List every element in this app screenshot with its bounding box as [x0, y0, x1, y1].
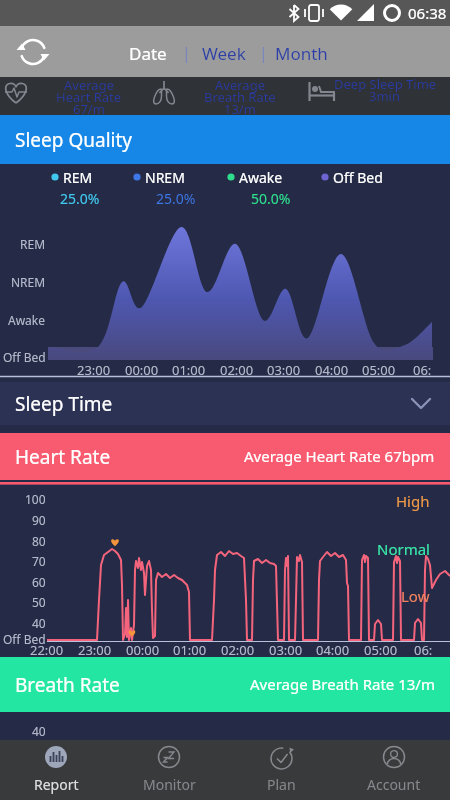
staticText: Awake: [8, 312, 46, 328]
staticText: 90: [32, 512, 46, 528]
staticText: 03:00: [269, 641, 303, 659]
staticText: NREM: [145, 168, 185, 187]
staticText: REM: [20, 236, 46, 252]
staticText: Plan: [267, 775, 296, 794]
staticText: 02:00: [220, 361, 254, 379]
staticText: 06:38: [408, 3, 447, 23]
staticText: 00:00: [126, 641, 160, 659]
staticText: Average: [64, 76, 114, 94]
staticText: 67/m: [73, 100, 105, 118]
staticText: Week: [202, 42, 246, 65]
staticText: 25.0%: [156, 189, 196, 208]
staticText: |: [182, 42, 191, 64]
staticText: 06:: [413, 361, 432, 379]
staticText: NREM: [11, 274, 46, 290]
button[interactable]: [225, 740, 337, 800]
staticText: Average Heart Rate 67bpm: [244, 446, 435, 466]
staticText: Heart Rate: [15, 444, 111, 470]
staticText: 80: [32, 533, 46, 549]
button[interactable]: [0, 740, 112, 800]
staticText: 04:00: [316, 641, 350, 659]
staticText: Account: [367, 775, 421, 794]
staticText: Monitor: [143, 775, 196, 794]
staticText: 03:00: [267, 361, 301, 379]
staticText: 06:: [414, 641, 433, 659]
staticText: 50: [32, 594, 46, 610]
staticText: Sleep Quality: [15, 127, 132, 153]
staticText: 50.0%: [251, 189, 291, 208]
staticText: 01:00: [173, 641, 207, 659]
staticText: Off Bed: [333, 168, 383, 187]
staticText: Report: [34, 775, 79, 794]
staticText: Breath Rate: [204, 88, 276, 106]
staticText: 40: [32, 615, 46, 631]
button[interactable]: Heart Rate: [0, 433, 450, 480]
staticText: Date: [129, 42, 167, 65]
staticText: Normal: [377, 539, 430, 559]
staticText: Heart Rate: [56, 88, 122, 106]
staticText: 05:00: [362, 361, 396, 379]
staticText: Sleep Time: [15, 391, 113, 417]
staticText: 100: [25, 491, 46, 507]
staticText: Off Bed: [3, 349, 46, 365]
staticText: Average: [215, 76, 265, 94]
staticText: Off Bed: [3, 631, 46, 647]
button[interactable]: Date: [120, 34, 176, 72]
button[interactable]: [338, 740, 450, 800]
staticText: REM: [63, 168, 93, 187]
staticText: 01:00: [172, 361, 206, 379]
staticText: 04:00: [315, 361, 349, 379]
staticText: High: [396, 491, 430, 511]
staticText: 3min: [369, 87, 400, 105]
staticText: Low: [401, 586, 430, 606]
staticText: Breath Rate: [15, 672, 120, 698]
staticText: 00:00: [125, 361, 159, 379]
staticText: 23:00: [78, 641, 112, 659]
button[interactable]: Sleep Quality: [0, 115, 450, 164]
button[interactable]: Month: [270, 34, 332, 72]
staticText: Awake: [239, 168, 283, 187]
staticText: 13/m: [224, 100, 256, 118]
button[interactable]: Breath Rate: [0, 657, 450, 712]
staticText: 22:00: [30, 641, 64, 659]
staticText: Deep Sleep Time: [334, 75, 437, 93]
staticText: 60: [32, 574, 46, 590]
staticText: Month: [275, 42, 328, 65]
staticText: |: [259, 42, 268, 64]
staticText: 02:00: [221, 641, 255, 659]
staticText: 70: [32, 553, 46, 569]
button[interactable]: Week: [196, 34, 252, 72]
button[interactable]: [16, 36, 52, 68]
staticText: 05:00: [364, 641, 398, 659]
staticText: 25.0%: [60, 189, 100, 208]
button[interactable]: Sleep Time: [0, 382, 450, 425]
staticText: Average Breath Rate 13/m: [250, 674, 435, 694]
button[interactable]: [113, 740, 225, 800]
staticText: 40: [32, 723, 46, 739]
staticText: 23:00: [77, 361, 111, 379]
